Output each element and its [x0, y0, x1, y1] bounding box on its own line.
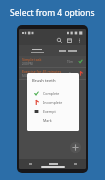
- staticText: 15m: [67, 60, 73, 64]
- button[interactable]: Mark: [32, 116, 75, 125]
- button[interactable]: Today: [42, 159, 64, 169]
- staticText: 1h: [69, 72, 73, 76]
- button[interactable]: Stats: [64, 159, 86, 169]
- button[interactable]: Simple task: [19, 56, 86, 67]
- staticText: Simple task: [22, 57, 42, 62]
- staticText: Select from 4 options: [10, 7, 95, 19]
- button[interactable]: Incomplete: [32, 98, 75, 107]
- staticText: Incomplete: [43, 100, 63, 105]
- button[interactable]: Add task: [70, 142, 81, 153]
- button[interactable]: Exercise for 45 minutes: [19, 68, 86, 79]
- button[interactable]: Tasks: [19, 159, 42, 169]
- staticText: 2:00 PM: [22, 62, 33, 66]
- staticText: Mark: [43, 118, 52, 123]
- button[interactable]: Exempt: [32, 107, 75, 116]
- button[interactable]: Search: [56, 37, 63, 44]
- staticText: Exempt: [43, 109, 56, 114]
- button[interactable]: Calendar: [66, 37, 73, 44]
- staticText: Exercise for 45 minutes: [22, 69, 62, 74]
- button[interactable]: Complete: [32, 89, 75, 98]
- staticText: Brush teeth: [32, 78, 56, 84]
- staticText: Complete: [43, 91, 60, 96]
- button[interactable]: More options: [76, 37, 83, 44]
- staticText: 5:00 PM: [22, 74, 33, 78]
